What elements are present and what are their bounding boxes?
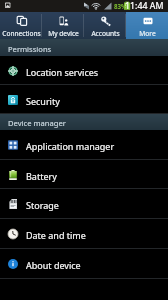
button[interactable]: Security (0, 85, 168, 114)
staticText: Permissions (8, 44, 52, 54)
staticText: About device (26, 259, 81, 271)
staticText: More (139, 29, 156, 38)
staticText: Device manager (8, 118, 66, 128)
button[interactable]: Location services (0, 56, 168, 85)
button[interactable]: Accounts (84, 12, 126, 39)
staticText: 11:44 AM (125, 0, 164, 12)
staticText: Location services (26, 66, 99, 78)
staticText: My device (48, 29, 79, 38)
staticText: Security (26, 95, 60, 107)
staticText: Date and time (26, 229, 86, 241)
staticText: Connections (2, 29, 41, 38)
button[interactable]: My device (42, 12, 84, 39)
button[interactable]: Date and time (0, 219, 168, 249)
staticText: Storage (26, 199, 59, 211)
staticText: Application manager (26, 140, 115, 152)
button[interactable]: Battery (0, 160, 168, 189)
staticText: Accounts (91, 29, 120, 38)
staticText: 83% (114, 2, 127, 10)
button[interactable]: About device (0, 249, 168, 279)
button[interactable]: More (126, 12, 168, 39)
button[interactable]: Storage (0, 189, 168, 219)
button[interactable]: Connections (0, 12, 42, 39)
staticText: Battery (26, 170, 57, 182)
button[interactable]: Application manager (0, 130, 168, 160)
